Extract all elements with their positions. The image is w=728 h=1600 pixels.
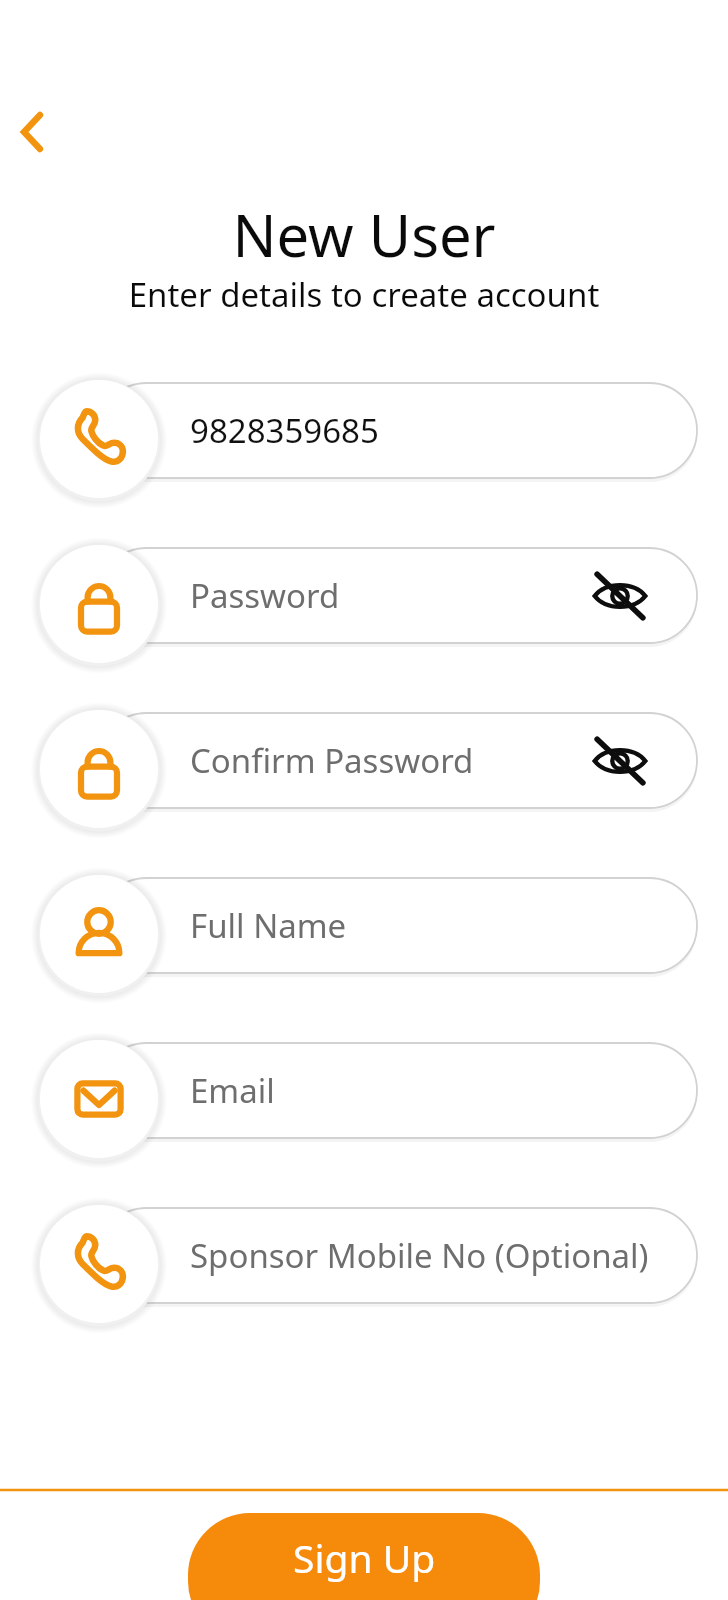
staticText: Sign Up [293,1531,436,1584]
button[interactable]: Email [33,1033,165,1165]
button[interactable]: Sponsor mobile number [33,1198,165,1330]
button[interactable]: Sponsor Mobile No (Optional) [99,1208,697,1303]
button[interactable]: Confirm password [33,703,165,835]
button[interactable]: 9828359685 [99,383,697,478]
staticText: Password [190,573,340,618]
staticText: Sponsor Mobile No (Optional) [190,1233,649,1278]
button[interactable]: Sign Up [188,1513,540,1600]
button[interactable]: Email [99,1043,697,1138]
staticText: Full Name [190,903,347,948]
button[interactable]: Mobile number [33,373,165,505]
staticText: New User [0,195,728,274]
staticText: Enter details to create account [0,272,728,317]
staticText: Confirm Password [190,738,474,783]
button[interactable]: Password [33,538,165,670]
button[interactable]: Show password [591,567,649,625]
button[interactable]: Back [0,100,64,164]
button[interactable]: Password [99,548,697,643]
button[interactable]: Show password [591,732,649,790]
button[interactable]: Full Name [99,878,697,973]
button[interactable]: Full name [33,868,165,1000]
staticText: 9828359685 [190,408,379,453]
staticText: Email [190,1068,275,1113]
button[interactable]: Confirm Password [99,713,697,808]
